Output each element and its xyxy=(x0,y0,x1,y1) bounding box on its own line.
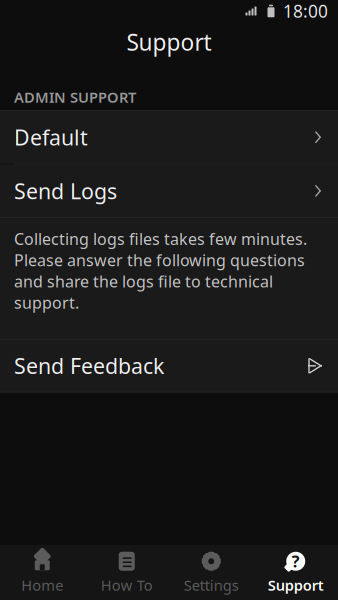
staticText: Send Feedback xyxy=(14,352,164,380)
staticText: Settings xyxy=(184,575,239,595)
button[interactable]: Settings xyxy=(169,545,253,600)
button[interactable]: Default xyxy=(0,111,338,164)
staticText: Home xyxy=(21,575,63,595)
staticText: 18:00 xyxy=(283,0,328,22)
staticText: Support xyxy=(268,575,324,595)
staticText: ADMIN SUPPORT xyxy=(14,87,136,107)
staticText: Default xyxy=(14,123,88,151)
staticText: Collecting logs files takes few minutes.… xyxy=(14,228,307,313)
staticText: Send Logs xyxy=(14,177,117,205)
button[interactable]: Send Feedback xyxy=(0,340,338,392)
staticText: How To xyxy=(101,575,153,595)
staticText: ? xyxy=(292,551,300,572)
button[interactable]: ? xyxy=(253,545,338,600)
button[interactable]: Home xyxy=(0,545,84,600)
button[interactable]: Send Logs xyxy=(0,164,338,217)
staticText: Support xyxy=(126,27,211,57)
button[interactable]: How To xyxy=(84,545,169,600)
